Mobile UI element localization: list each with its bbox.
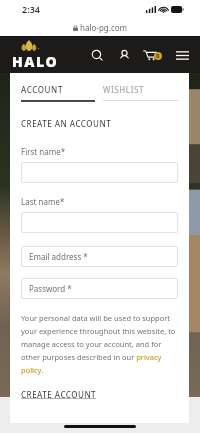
staticText: Last name* xyxy=(21,196,65,207)
staticText: ACCOUNT xyxy=(21,84,63,95)
staticText: 2:34 xyxy=(22,3,40,15)
staticText: Password * xyxy=(29,283,72,294)
staticText: WISHLIST xyxy=(103,84,145,95)
staticText: CREATE AN ACCOUNT xyxy=(21,118,112,129)
staticText: Your personal data will be used to suppo… xyxy=(21,313,178,375)
button[interactable]: Password * xyxy=(21,278,178,299)
button[interactable] xyxy=(21,212,178,233)
button[interactable] xyxy=(21,162,178,183)
staticText: 0 xyxy=(156,52,160,60)
button[interactable]: CREATE ACCOUNT xyxy=(21,389,97,400)
staticText: Email address * xyxy=(29,251,88,262)
staticText: First name* xyxy=(21,146,66,157)
button[interactable]: Cart, 0 items xyxy=(143,47,163,63)
button[interactable]: ACCOUNT xyxy=(21,84,95,102)
staticText: HALO xyxy=(12,52,59,71)
staticText: CREATE ACCOUNT xyxy=(21,389,97,400)
button[interactable]: Account xyxy=(116,47,132,63)
button[interactable]: Search xyxy=(89,47,105,63)
staticText: halo-pg.com xyxy=(80,22,128,33)
button[interactable]: WISHLIST xyxy=(103,84,178,101)
button[interactable]: Menu xyxy=(174,47,190,63)
button[interactable]: Email address * xyxy=(21,246,178,267)
